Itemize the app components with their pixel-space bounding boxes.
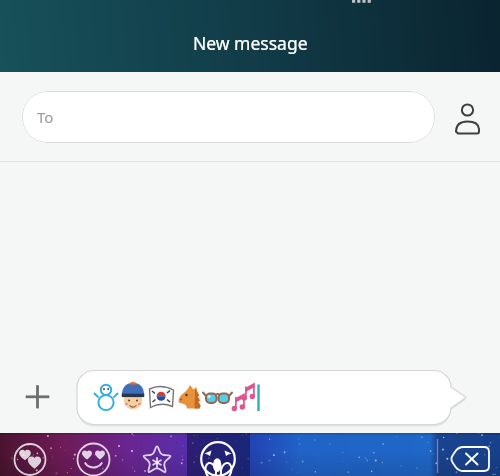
- button[interactable]: To: [22, 91, 435, 143]
- button[interactable]: [72, 433, 114, 476]
- staticText: New message: [193, 31, 308, 55]
- button[interactable]: [444, 433, 496, 476]
- staticText: To: [37, 107, 54, 127]
- button[interactable]: [77, 371, 466, 425]
- button[interactable]: [136, 433, 178, 476]
- button[interactable]: [10, 433, 52, 476]
- button[interactable]: [14, 376, 54, 416]
- button[interactable]: [196, 433, 244, 476]
